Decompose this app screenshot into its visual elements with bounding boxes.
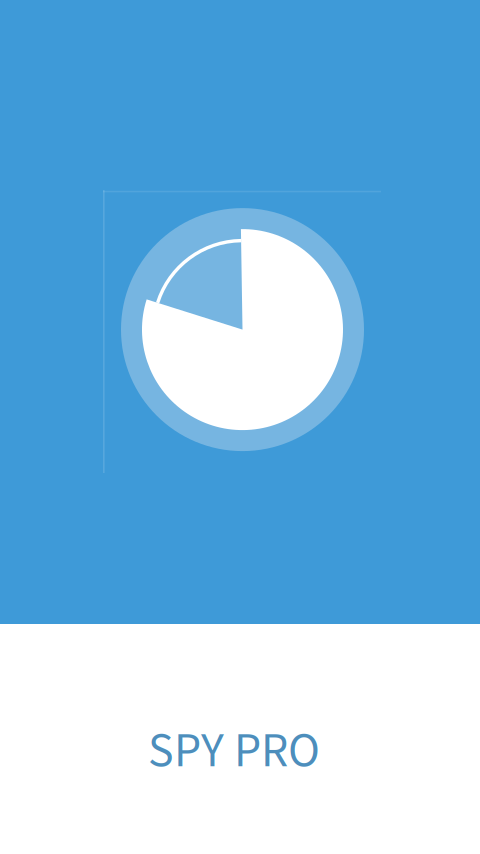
staticText: SPY PRO — [148, 717, 320, 785]
